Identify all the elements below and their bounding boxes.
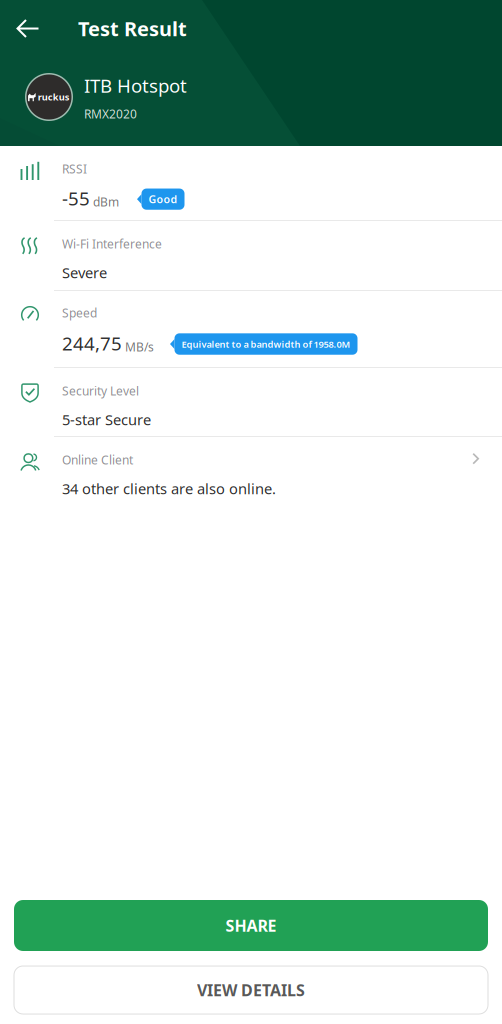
staticText: Severe <box>62 263 107 282</box>
staticText: -55 <box>62 186 90 211</box>
staticText: ruckus <box>38 91 70 103</box>
staticText: RSSI <box>62 161 87 177</box>
button[interactable]: SHARE <box>14 900 488 951</box>
staticText: Online Client <box>62 452 133 468</box>
staticText: Wi-Fi Interference <box>62 236 162 252</box>
staticText: ITB Hotspot <box>84 73 187 98</box>
staticText: Speed <box>62 305 97 321</box>
staticText: 5-star Secure <box>62 410 151 429</box>
staticText: Equivalent to a bandwidth of 1958.0M <box>181 338 350 350</box>
button[interactable]: VIEW DETAILS <box>14 966 488 1014</box>
staticText: VIEW DETAILS <box>197 979 305 1001</box>
staticText: RMX2020 <box>84 106 137 122</box>
staticText: 34 other clients are also online. <box>62 479 276 498</box>
staticText: Test Result <box>78 15 187 42</box>
staticText: 244,75 <box>62 331 122 356</box>
staticText: Good <box>148 192 177 206</box>
staticText: dBm <box>90 194 119 210</box>
staticText: SHARE <box>225 915 276 936</box>
staticText: Security Level <box>62 383 139 399</box>
staticText: MB/s <box>122 339 154 355</box>
button[interactable]: Back <box>0 11 54 46</box>
